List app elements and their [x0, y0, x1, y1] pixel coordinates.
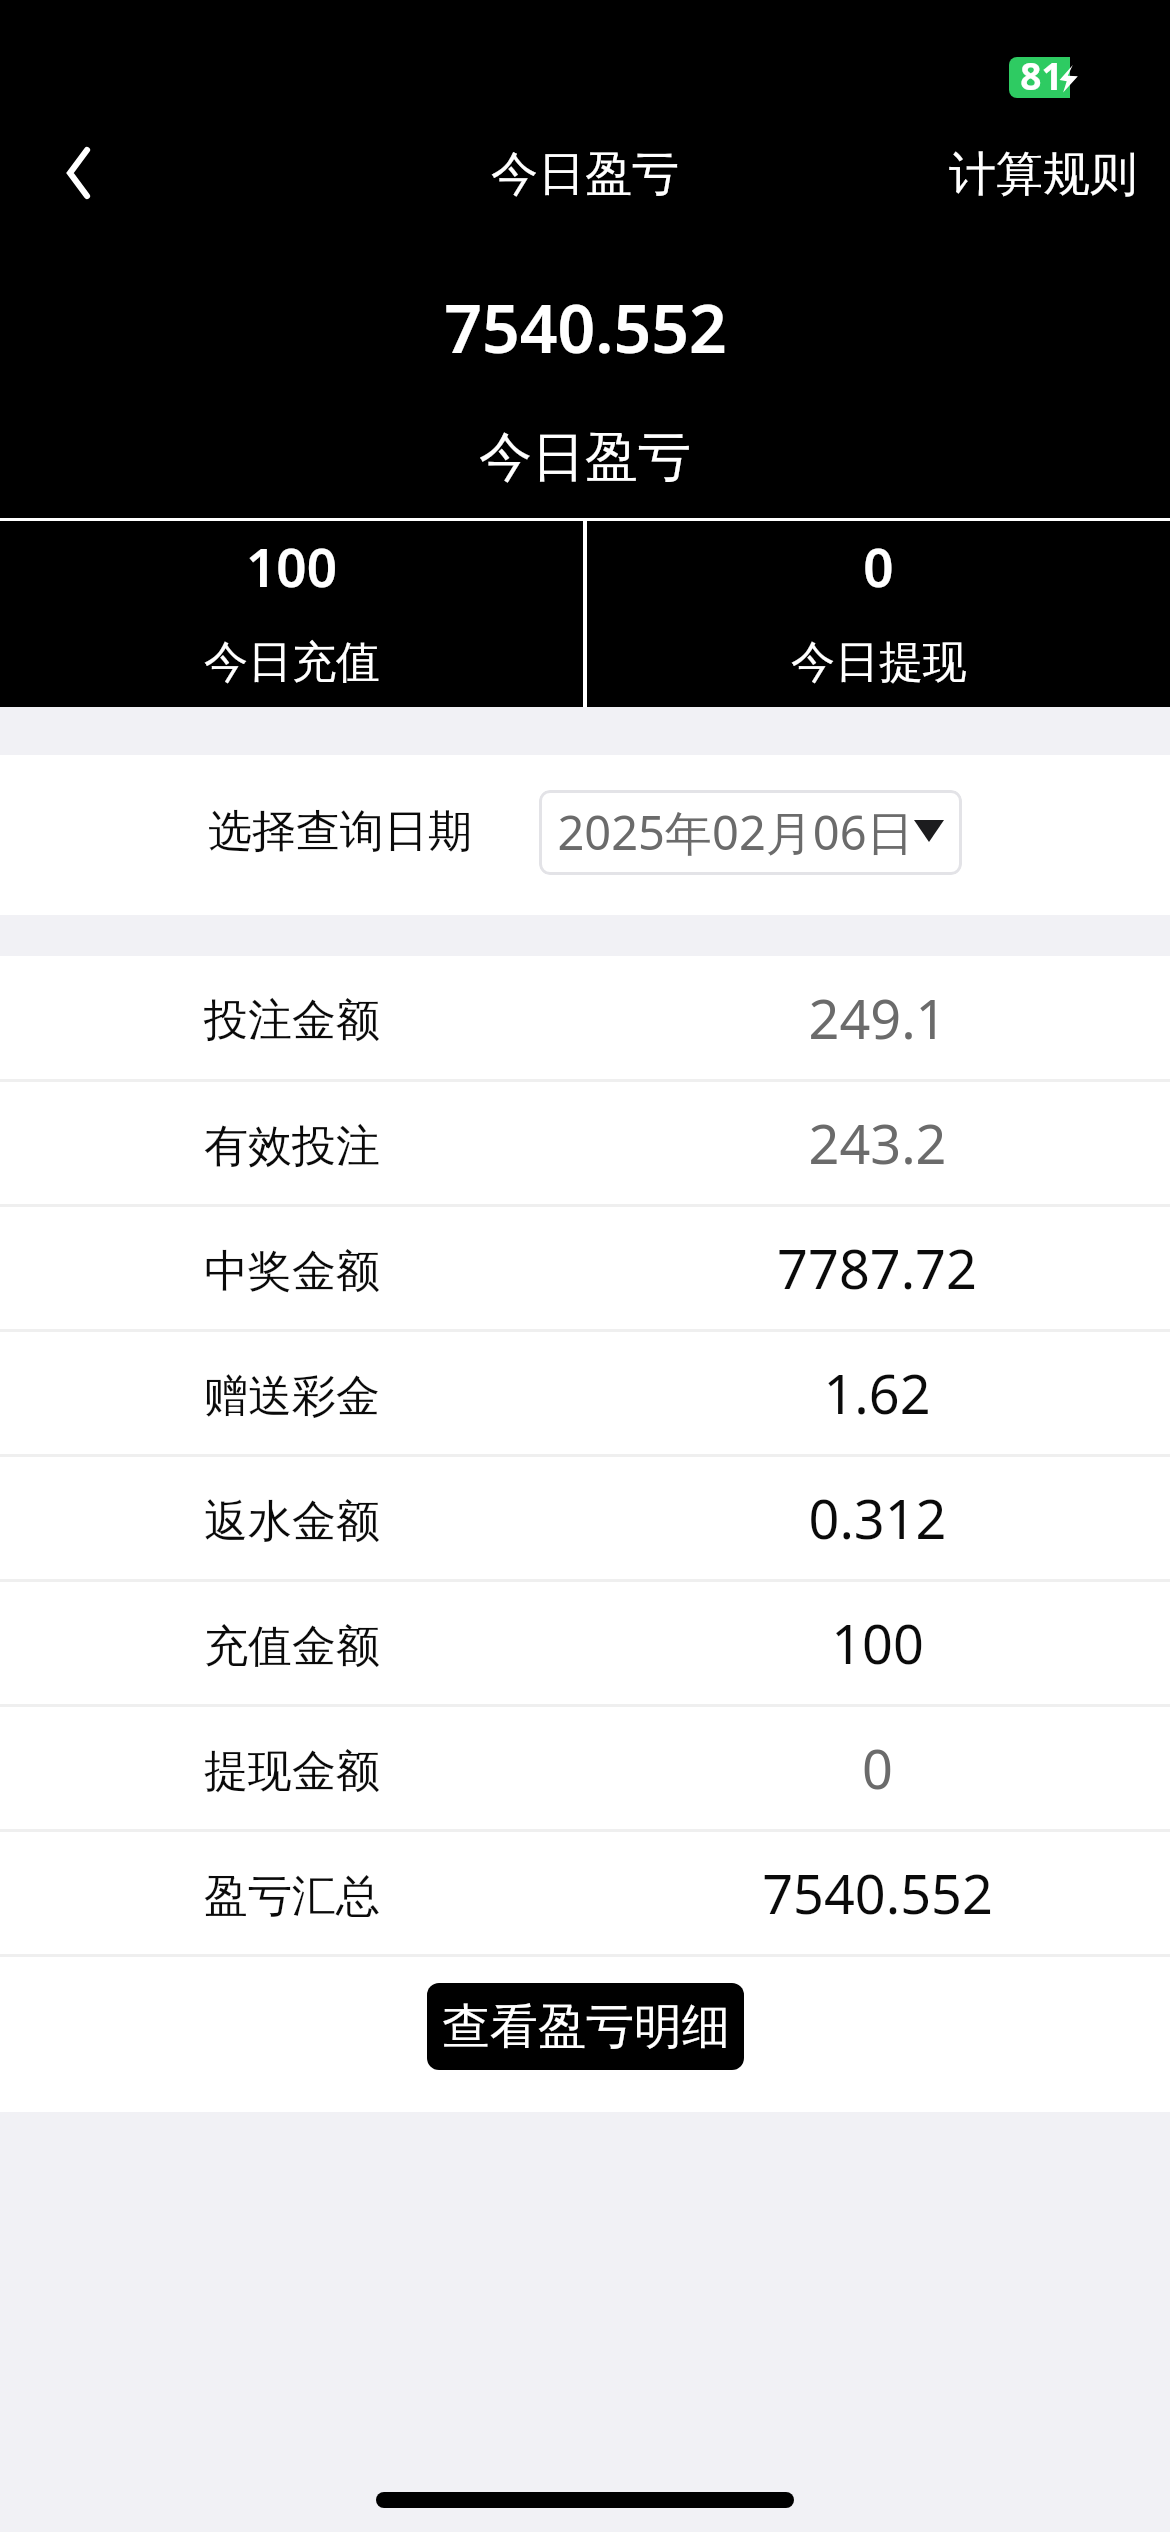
staticText: 充值金额 — [204, 1619, 380, 1674]
staticText: 7787.72 — [777, 1231, 977, 1305]
staticText: 有效投注 — [204, 1119, 380, 1174]
button[interactable]: 有效投注 — [0, 1082, 1170, 1204]
button[interactable]: 充值金额 — [0, 1582, 1170, 1704]
staticText: 盈亏汇总 — [204, 1869, 380, 1924]
staticText: 1.62 — [823, 1356, 931, 1430]
button[interactable]: 投注金额 — [0, 956, 1170, 1079]
staticText: 今日盈亏 — [491, 145, 679, 204]
staticText: 今日盈亏 — [479, 424, 691, 491]
staticText: 100 — [246, 530, 337, 602]
staticText: 查看盈亏明细 — [442, 1997, 730, 2057]
button[interactable]: 盈亏汇总 — [0, 1832, 1170, 1954]
staticText: 249.1 — [808, 981, 947, 1055]
staticText: 提现金额 — [204, 1744, 380, 1799]
button[interactable]: 赠送彩金 — [0, 1332, 1170, 1454]
staticText: 7540.552 — [444, 282, 727, 372]
staticText: 中奖金额 — [204, 1244, 380, 1299]
staticText: 0 — [863, 530, 894, 602]
staticText: 243.2 — [808, 1106, 947, 1180]
staticText: 赠送彩金 — [204, 1369, 380, 1424]
button[interactable]: 0 — [587, 521, 1170, 707]
button[interactable]: Back — [40, 136, 116, 210]
button[interactable]: 计算规则 — [919, 135, 1170, 218]
staticText: 2025年02月06日 — [557, 800, 914, 864]
staticText: 81 — [1020, 50, 1063, 91]
staticText: 返水金额 — [204, 1494, 380, 1549]
button[interactable]: 返水金额 — [0, 1457, 1170, 1579]
staticText: 0 — [862, 1731, 893, 1805]
staticText: 0.312 — [808, 1481, 947, 1555]
staticText: 今日提现 — [791, 635, 967, 690]
button[interactable]: 查看盈亏明细 — [427, 1983, 744, 2070]
staticText: 选择查询日期 — [208, 804, 472, 859]
staticText: 计算规则 — [949, 145, 1137, 204]
button[interactable]: 中奖金额 — [0, 1207, 1170, 1329]
staticText: 投注金额 — [204, 993, 380, 1048]
button[interactable]: 100 — [0, 521, 583, 707]
staticText: 100 — [831, 1606, 924, 1680]
button[interactable]: 提现金额 — [0, 1707, 1170, 1829]
staticText: 今日充值 — [204, 635, 380, 690]
button[interactable]: 2025年02月06日 — [539, 790, 962, 875]
staticText: 7540.552 — [762, 1856, 993, 1930]
